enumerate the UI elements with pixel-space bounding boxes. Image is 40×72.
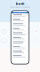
staticText: Find anything across the app bbox=[10, 6, 30, 8]
button[interactable]: Search field bbox=[12, 10, 28, 12]
staticText: Search bbox=[15, 2, 24, 6]
